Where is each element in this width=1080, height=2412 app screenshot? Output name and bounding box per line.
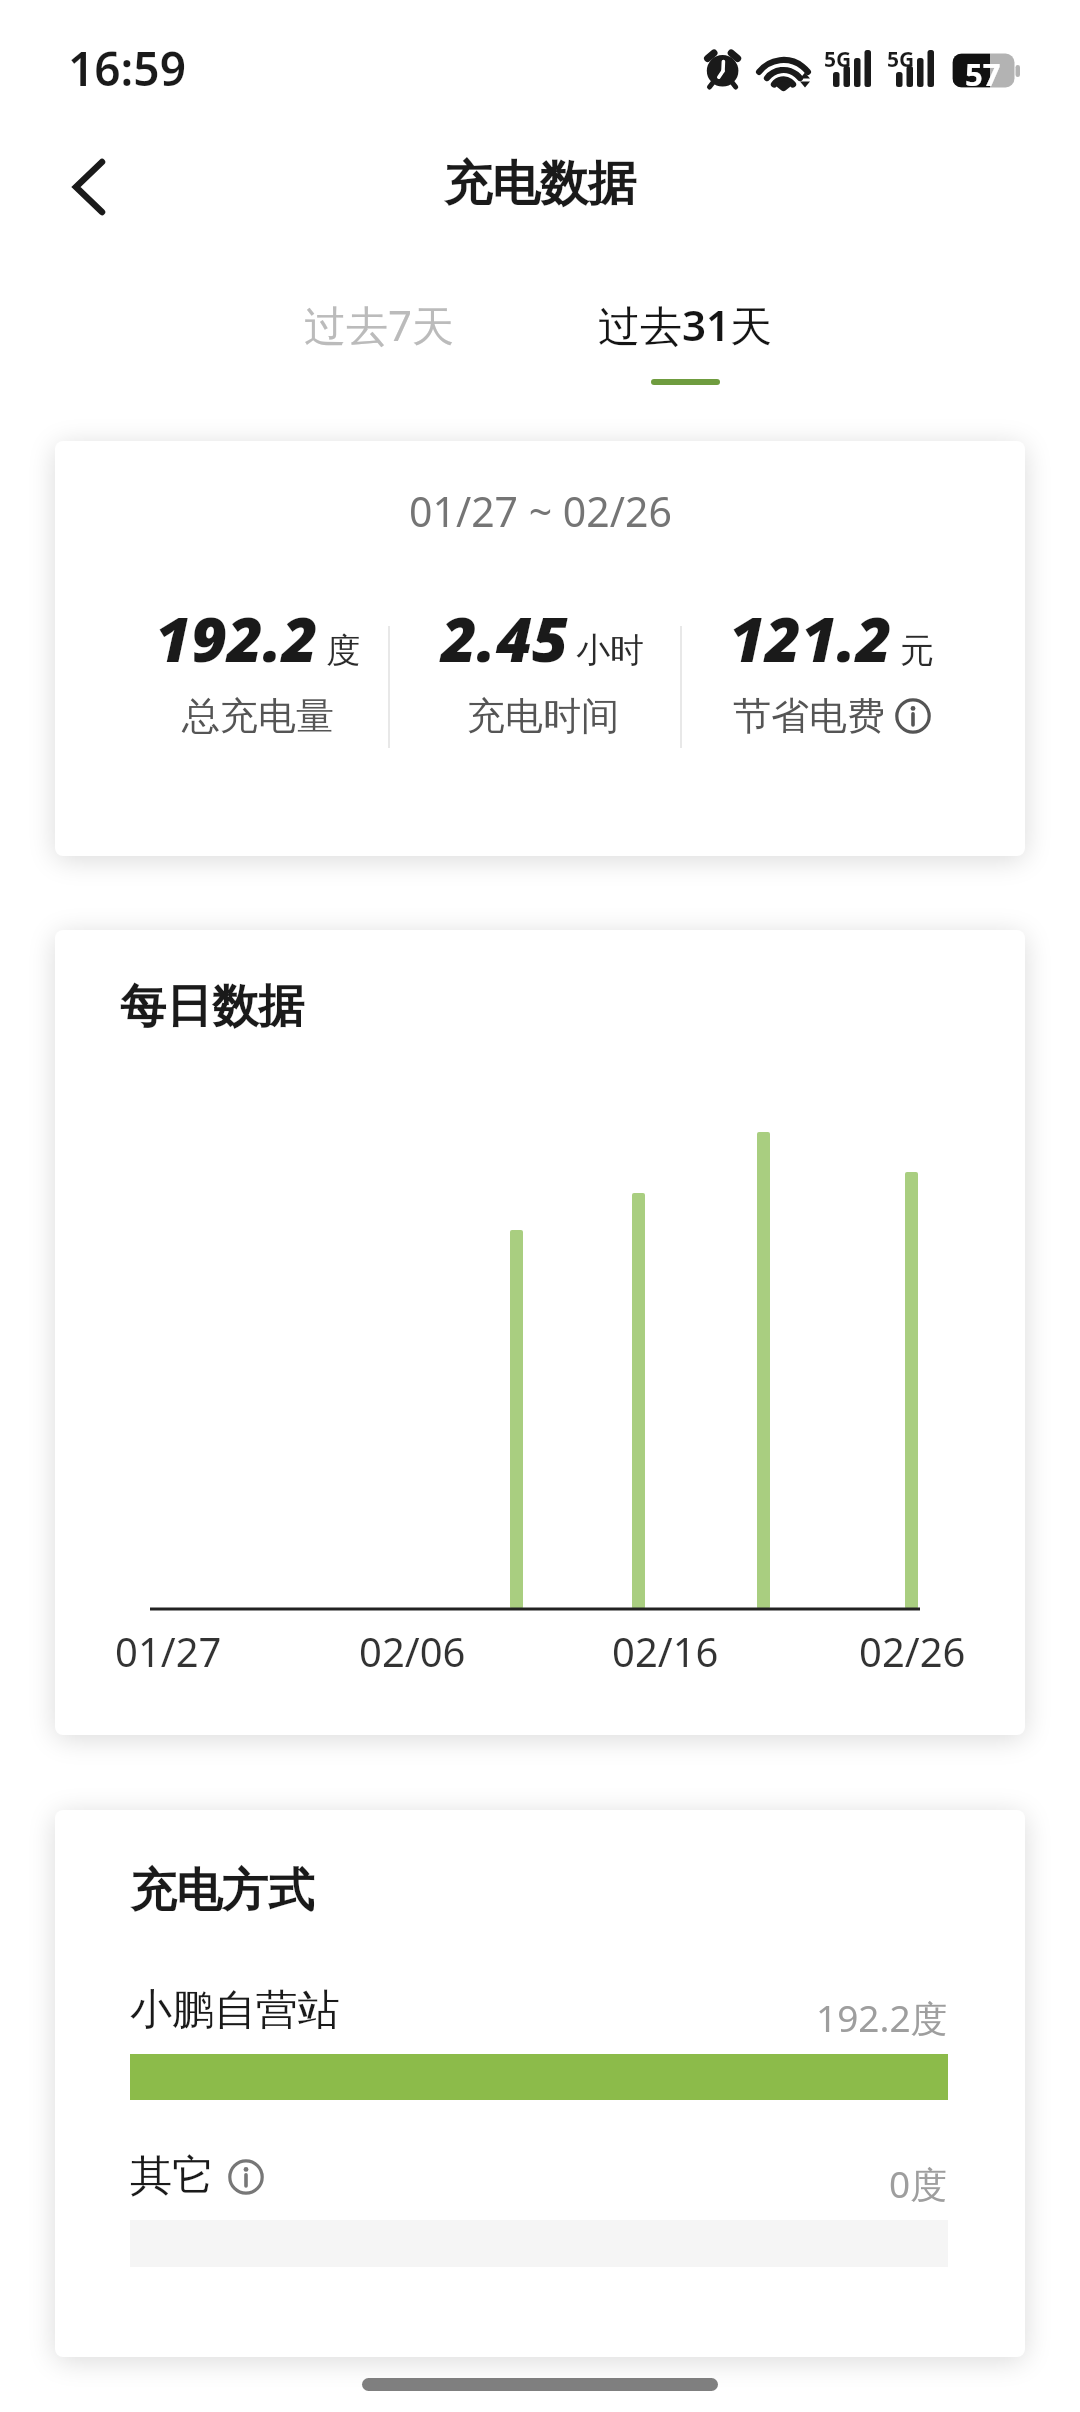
button[interactable]: 过去31天 [585, 293, 785, 355]
button[interactable] [895, 698, 931, 734]
staticText: 节省电费 [733, 692, 885, 740]
staticText: 每日数据 [120, 978, 304, 1036]
staticText: 充电数据 [444, 154, 636, 214]
button[interactable]: 过去7天 [279, 293, 479, 355]
staticText: 02/16 [612, 1624, 719, 1678]
staticText: 5G [887, 45, 915, 74]
staticText: 57 [965, 53, 1001, 95]
staticText: 充电时间 [467, 692, 619, 740]
staticText: 过去31天 [598, 296, 773, 353]
staticText: 02/06 [359, 1624, 466, 1678]
staticText: 02/26 [859, 1624, 966, 1678]
staticText: 元 [900, 629, 934, 672]
button[interactable] [228, 2159, 264, 2195]
staticText: 过去7天 [304, 296, 455, 353]
staticText: 充电方式 [130, 1862, 314, 1920]
staticText: 192.2 [155, 596, 318, 680]
staticText: 0度 [889, 2158, 948, 2209]
button[interactable] [72, 160, 106, 214]
staticText: 5G [824, 45, 852, 74]
staticText: 度 [326, 629, 360, 672]
staticText: 其它 [130, 2150, 214, 2203]
staticText: 192.2度 [816, 1992, 948, 2043]
staticText: 2.45 [441, 596, 568, 680]
staticText: 总充电量 [182, 692, 334, 740]
staticText: 01/27 [115, 1624, 222, 1678]
staticText: 小时 [576, 629, 644, 672]
staticText: 16:59 [68, 37, 186, 100]
staticText: 121.2 [729, 596, 892, 680]
staticText: 01/27 ~ 02/26 [409, 483, 672, 539]
staticText: 小鹏自营站 [130, 1984, 340, 2037]
